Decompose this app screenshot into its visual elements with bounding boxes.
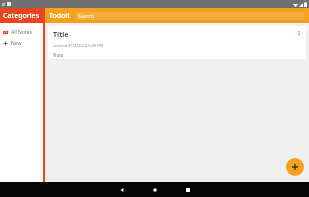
button[interactable]: Search	[75, 12, 305, 20]
button[interactable]: Title	[48, 26, 306, 59]
staticText: All Notes	[11, 29, 32, 36]
staticText: Note	[53, 52, 64, 58]
button[interactable]: Add note	[286, 158, 304, 176]
button[interactable]: Todoit	[49, 11, 70, 21]
staticText: New Category	[11, 40, 43, 47]
button[interactable]: New Category	[0, 38, 43, 49]
staticText: Todoit	[49, 11, 70, 21]
button[interactable]: Categories	[0, 8, 43, 23]
staticText: Categories	[3, 11, 40, 21]
button[interactable]: More options	[294, 28, 303, 37]
staticText: Title	[53, 30, 69, 40]
button[interactable]: Back	[112, 182, 132, 197]
button[interactable]: All Notes	[0, 27, 43, 38]
button[interactable]: Recent apps	[178, 182, 198, 197]
staticText: Search	[78, 13, 94, 20]
staticText: created 8/12/2024 6:49 PM	[53, 43, 104, 48]
button[interactable]: Home	[145, 182, 165, 197]
